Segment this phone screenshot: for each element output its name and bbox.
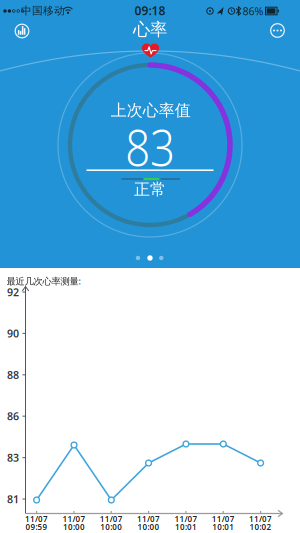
- staticText: 中国移动: [21, 4, 65, 17]
- staticText: 11/07: [212, 514, 235, 524]
- staticText: 上次心率值: [111, 101, 191, 120]
- staticText: 11/07: [174, 514, 197, 524]
- staticText: 11/07: [100, 514, 123, 524]
- staticText: 81: [7, 492, 19, 506]
- staticText: 心率: [133, 19, 167, 40]
- staticText: 正常: [134, 180, 166, 199]
- staticText: 10:00: [100, 522, 122, 532]
- staticText: 10:00: [63, 522, 85, 532]
- staticText: 11/07: [137, 514, 160, 524]
- staticText: 10:01: [175, 522, 197, 532]
- staticText: 92: [7, 285, 19, 299]
- button[interactable]: More: [266, 19, 288, 41]
- staticText: 10:01: [212, 522, 234, 532]
- staticText: 90: [7, 326, 19, 340]
- staticText: 83: [119, 110, 181, 183]
- staticText: 11/07: [249, 514, 272, 524]
- staticText: 88: [7, 368, 19, 382]
- staticText: 09:59: [26, 522, 48, 532]
- staticText: 09:18: [134, 2, 165, 18]
- staticText: 11/07: [25, 514, 48, 524]
- staticText: 最近几次心率测量:: [6, 275, 81, 287]
- button[interactable]: History: [11, 20, 33, 42]
- staticText: 10:00: [138, 522, 160, 532]
- staticText: 10:02: [250, 522, 272, 532]
- staticText: 11/07: [62, 514, 85, 524]
- staticText: 83: [7, 450, 19, 465]
- staticText: 86%: [242, 4, 263, 18]
- staticText: 86: [7, 409, 19, 423]
